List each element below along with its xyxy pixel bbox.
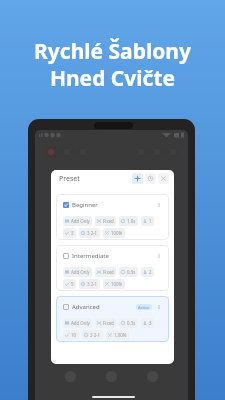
staticText: 5 [71,281,74,287]
button[interactable]: Intermediate [56,245,169,291]
staticText: 1.0s [127,218,136,224]
staticText: Fixed [103,320,114,326]
button[interactable]: Advanced [56,296,169,342]
button[interactable]: History [145,173,156,184]
staticText: Preset [59,174,80,184]
staticText: Advanced [72,303,100,311]
button[interactable]: Nav item [106,371,117,382]
staticText: 3 [71,230,74,236]
staticText: Fixed [103,218,114,224]
staticText: Add Only [71,320,90,326]
button[interactable]: Nav item [147,371,158,382]
staticText: 3 2-1 [90,332,101,338]
staticText: 0.5s [127,269,136,275]
staticText: 100% [111,281,123,287]
button[interactable]: Beginner [56,194,169,240]
staticText: 3 2-1 [87,230,98,236]
button[interactable]: Add preset [132,173,143,184]
button[interactable]: Close [158,173,169,184]
staticText: Add Only [71,218,90,224]
staticText: Rychlé Šablony Hned Cvičte [0,37,225,92]
staticText: 100% [111,230,123,236]
staticText: Fixed [103,269,114,275]
staticText: 0.3s [127,320,136,326]
staticText: Active [138,305,150,310]
staticText: 10 [71,332,77,338]
staticText: 1 [149,218,152,224]
staticText: 1,00% [114,332,127,338]
staticText: 2 [149,269,152,275]
staticText: 3 2-1 [87,281,98,287]
staticText: 3 [149,320,152,326]
button[interactable]: Action [45,146,57,158]
staticText: Beginner [72,201,98,209]
staticText: Intermediate [72,252,109,260]
staticText: Add Only [71,269,90,275]
button[interactable]: Nav item [65,371,76,382]
